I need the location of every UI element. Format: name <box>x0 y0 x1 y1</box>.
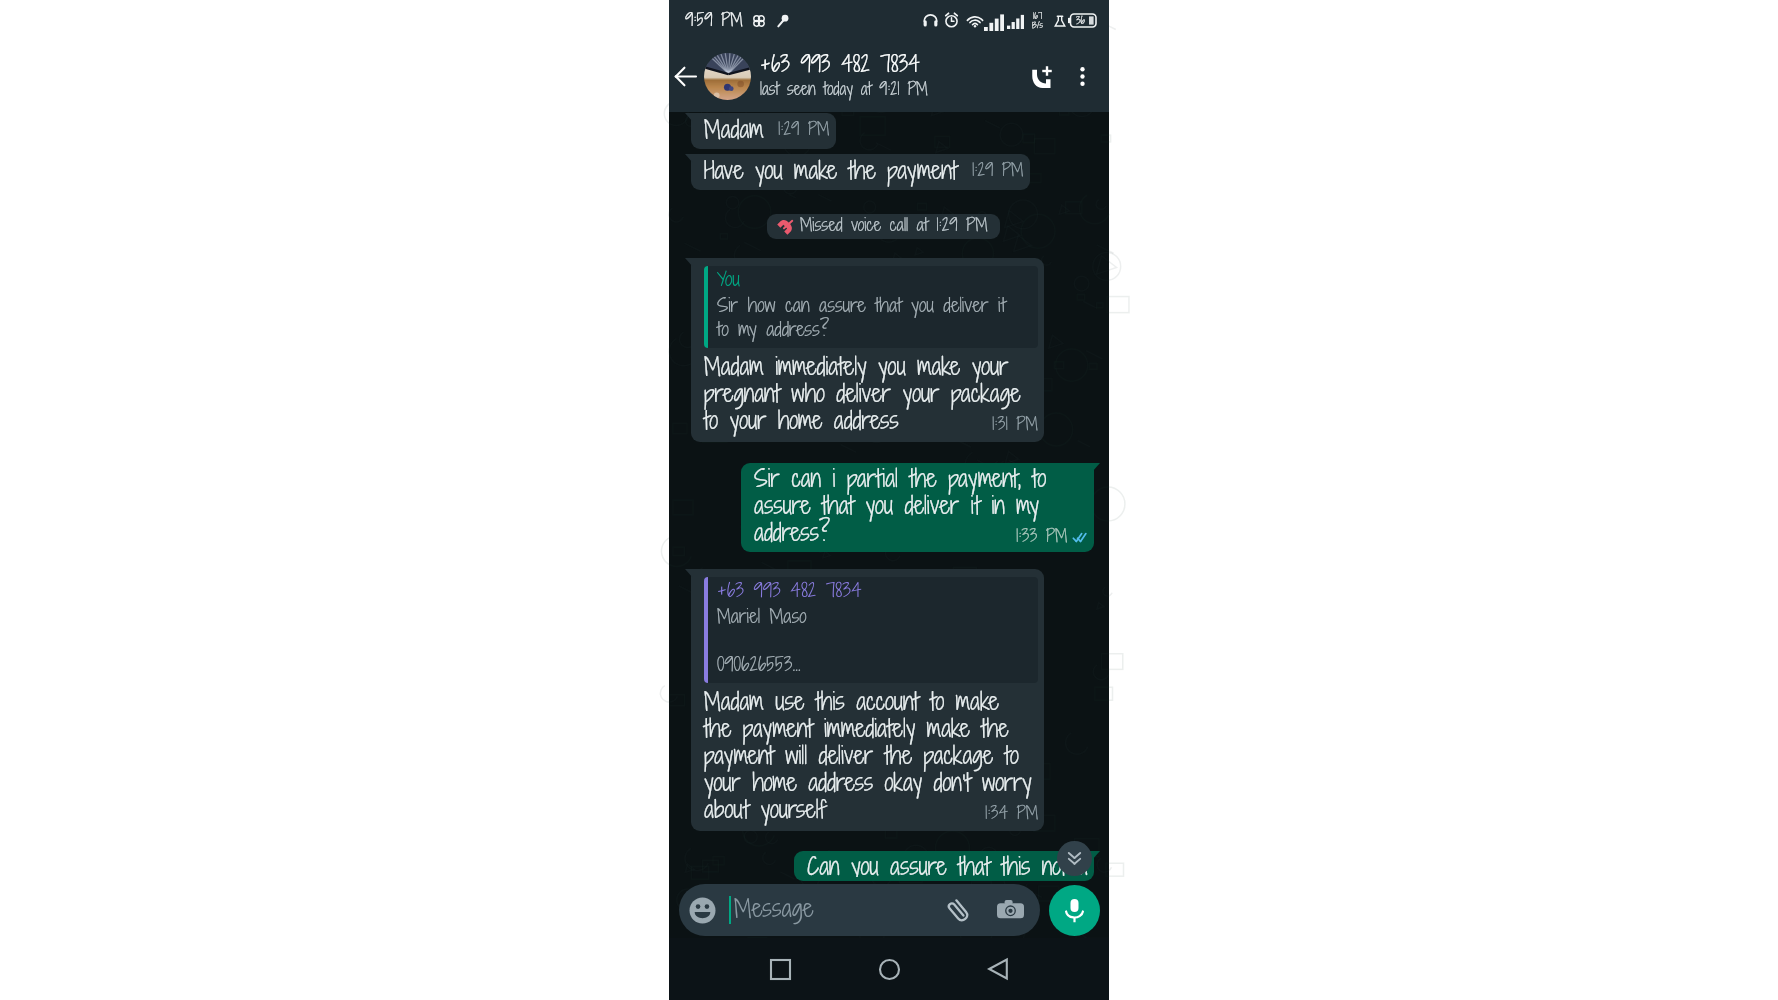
staticText: Sir can i partial the payment, to assure… <box>754 467 1047 548</box>
staticText: Madam use this account to make the payme… <box>704 690 1032 825</box>
staticText: 36 <box>1076 15 1086 27</box>
staticText: B/s <box>1032 21 1044 30</box>
staticText: Madam immediately you make your pregnant… <box>704 355 1021 436</box>
staticText: 1:29 PM <box>778 115 830 141</box>
staticText: 1:34 PM <box>985 805 1038 823</box>
button[interactable]: More options <box>1063 41 1101 112</box>
button[interactable]: Home <box>868 948 910 990</box>
button[interactable]: Recents <box>759 948 801 990</box>
button[interactable]: You <box>691 258 1044 442</box>
button[interactable]: Sir can i partial the payment, to assure… <box>741 463 1094 552</box>
button[interactable]: +63 993 482 7834 <box>760 41 1017 112</box>
staticText: 1:33 PM <box>1016 528 1068 546</box>
staticText: 9:59 PM <box>685 11 743 31</box>
staticText: +63 993 482 7834 <box>760 53 920 78</box>
staticText: Have you make the payment <box>704 159 958 185</box>
staticText: 1:31 PM <box>992 416 1038 434</box>
button[interactable]: Can you assure that this not a <box>794 851 1094 881</box>
button[interactable]: Call <box>1017 41 1063 112</box>
staticText: Can you assure that this not a <box>807 855 1088 877</box>
button[interactable]: Voice message <box>1049 885 1100 936</box>
staticText: Madam <box>704 118 764 144</box>
button[interactable]: +63 993 482 7834 <box>691 569 1044 831</box>
button[interactable]: Missed voice call at 1:29 PM <box>767 214 1000 239</box>
staticText: +63 993 482 7834 <box>717 581 862 602</box>
staticText: last seen today at 9:21 PM <box>760 78 928 100</box>
staticText: Missed voice call at 1:29 PM <box>800 216 988 236</box>
staticText: You <box>717 270 740 291</box>
staticText: Sir how can assure that you deliver it t… <box>717 294 1006 342</box>
button[interactable]: Profile photo <box>704 53 751 100</box>
staticText: Message <box>734 897 945 923</box>
staticText: Mariel Maso 090626553... <box>717 605 807 677</box>
button[interactable]: Have you make the payment <box>691 154 1030 190</box>
button[interactable]: Back <box>977 948 1019 990</box>
button[interactable]: Madam <box>691 113 836 149</box>
button[interactable]: Message <box>679 884 1040 936</box>
staticText: 1:29 PM <box>972 156 1024 182</box>
staticText: 167 <box>1033 12 1043 21</box>
button[interactable]: Back <box>669 41 704 112</box>
button[interactable]: Scroll to bottom <box>1057 841 1092 876</box>
